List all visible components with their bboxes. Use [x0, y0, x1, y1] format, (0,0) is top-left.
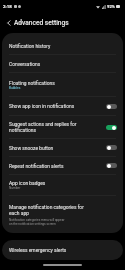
staticText: Advanced settings: [14, 19, 69, 27]
staticText: Bubbles: [9, 86, 21, 90]
button[interactable]: Conversations: [2, 55, 123, 72]
staticText: on the notification settings screen: [9, 222, 56, 226]
staticText: Number: [9, 186, 21, 190]
button[interactable]: Floating notifications: [2, 73, 123, 96]
button[interactable]: Suggest actions and replies for notifica…: [2, 116, 123, 138]
button[interactable]: Back: [2, 16, 15, 29]
staticText: Manage notification categories for: [9, 204, 84, 210]
button[interactable]: Notification history: [2, 37, 123, 54]
staticText: Repeat notification alerts: [9, 163, 64, 169]
button[interactable]: Repeat notification alerts: [106, 163, 117, 168]
button[interactable]: Show snooze button: [106, 145, 117, 150]
staticText: Conversations: [9, 61, 41, 67]
staticText: App icon badges: [9, 180, 46, 186]
button[interactable]: App icon badges: [2, 175, 123, 195]
button[interactable]: Show app icon in notifications: [106, 104, 117, 109]
staticText: Show app icon in notifications: [9, 103, 75, 109]
staticText: 2:18: [3, 4, 12, 9]
button[interactable]: Show snooze button: [2, 139, 123, 156]
staticText: Notification history: [9, 43, 51, 49]
staticText: Suggest actions and replies for notifica…: [9, 121, 103, 133]
staticText: Floating notifications: [9, 80, 55, 86]
button[interactable]: Wireless emergency alerts: [2, 240, 123, 260]
staticText: Show snooze button: [9, 145, 54, 151]
staticText: Notification categories menu will appear: [9, 218, 65, 222]
button[interactable]: Repeat notification alerts: [2, 157, 123, 174]
button[interactable]: Show app icon in notifications: [2, 97, 123, 115]
staticText: Wireless emergency alerts: [9, 247, 67, 253]
button[interactable]: Suggest actions and replies: [106, 125, 117, 130]
staticText: each app: [9, 210, 29, 216]
staticText: 92%: [107, 4, 115, 9]
button[interactable]: Manage notification categories for: [2, 196, 123, 233]
